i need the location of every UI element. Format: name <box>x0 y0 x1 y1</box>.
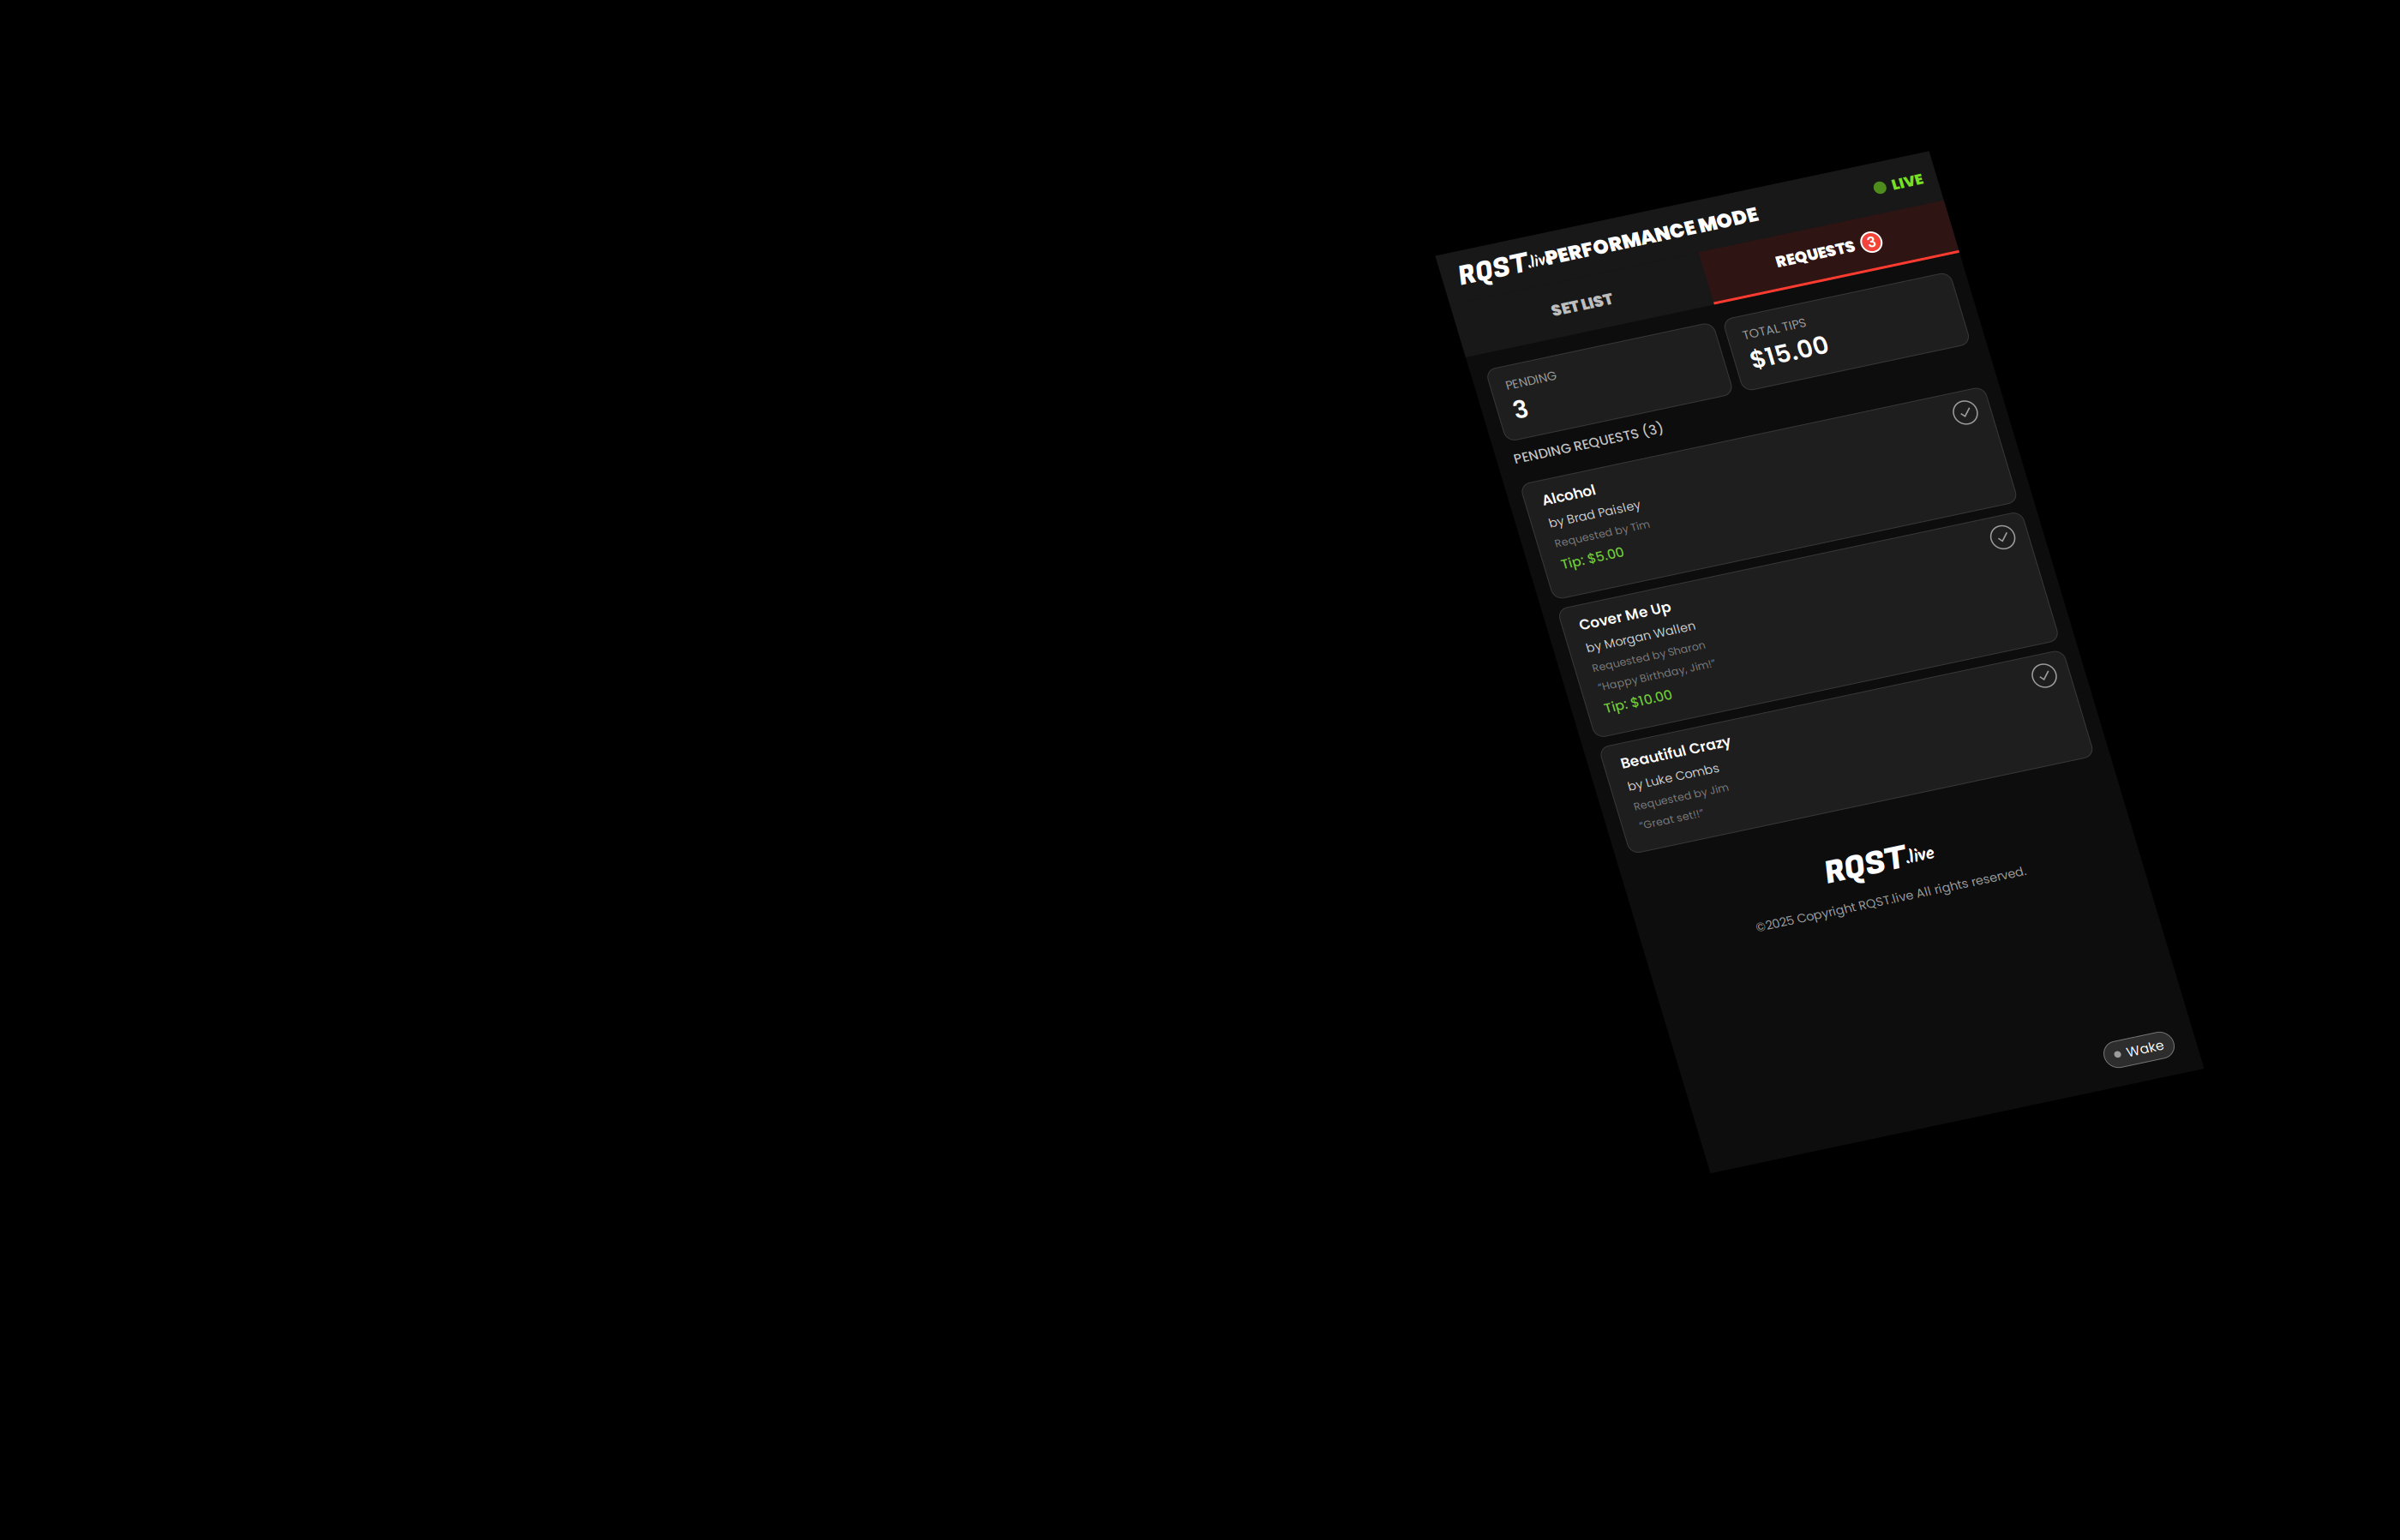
staticText: SET LIST <box>1660 243 1724 265</box>
staticText: REQUESTS <box>1894 241 1977 264</box>
staticText: by Luke Combs <box>1595 737 1690 755</box>
staticText: Beautiful Crazy <box>1595 711 1709 732</box>
staticText: Requested by Sharon <box>1595 613 1713 628</box>
button[interactable]: REQUESTS <box>1821 226 2077 282</box>
staticText: “Happy Birthday, Jim!” <box>1595 633 1718 648</box>
button[interactable]: Wake <box>1983 1104 2055 1132</box>
staticText: PENDING REQUESTS (3) <box>1580 385 1736 404</box>
staticText: “Great set!!” <box>1595 780 1662 796</box>
staticText: PENDING <box>1593 310 1646 328</box>
staticText: ©2025 Copyright RQST.live All rights res… <box>1679 906 1960 923</box>
button[interactable]: Cover Me Up <box>1578 554 2061 691</box>
staticText: Requested by Jim <box>1595 760 1694 775</box>
staticText: by Morgan Wallen <box>1595 590 1708 608</box>
staticText: PERFORMANCE MODE <box>1670 186 1891 214</box>
staticText: Alcohol <box>1595 431 1651 452</box>
button[interactable]: SET LIST <box>1563 226 1821 282</box>
button[interactable]: Beautiful Crazy <box>1578 701 2061 814</box>
staticText: Requested by Tim <box>1595 480 1694 495</box>
staticText: .live <box>1845 864 1875 892</box>
staticText: 3 <box>1593 328 1609 363</box>
staticText: Cover Me Up <box>1595 564 1690 585</box>
button[interactable]: Alcohol <box>1578 421 2061 543</box>
staticText: .live <box>1650 190 1677 214</box>
staticText: $15.00 <box>1840 328 1922 363</box>
staticText: RQST <box>1579 180 1652 220</box>
staticText: RQST <box>1762 852 1847 899</box>
staticText: Tip: $10.00 <box>1595 653 1665 673</box>
staticText: by Brad Paisley <box>1595 457 1690 475</box>
staticText: Tip: $5.00 <box>1595 500 1660 519</box>
